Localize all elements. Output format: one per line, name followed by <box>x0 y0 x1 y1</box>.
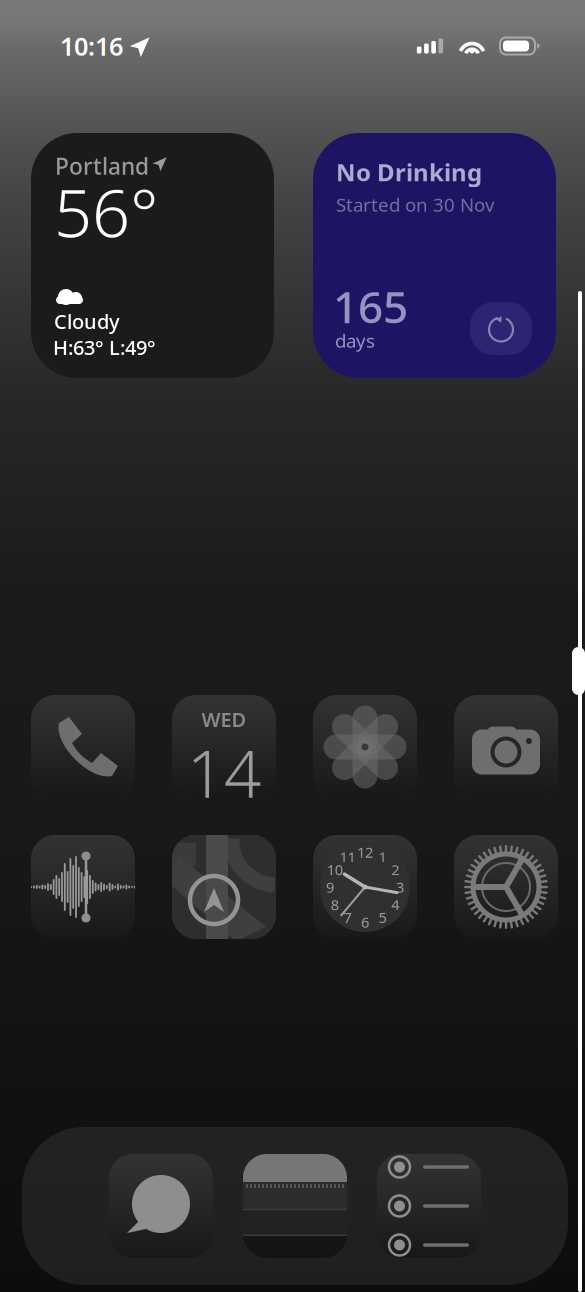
staticText: 6 <box>361 912 369 932</box>
staticText: Portland <box>55 151 149 181</box>
button[interactable]: Messages <box>109 1154 213 1258</box>
button[interactable]: Photos <box>313 695 417 799</box>
staticText: 5 <box>378 908 386 927</box>
button[interactable]: Reminders <box>377 1154 481 1258</box>
staticText: 9 <box>326 877 334 897</box>
staticText: 1 <box>378 847 386 866</box>
staticText: 14 <box>187 729 261 816</box>
button[interactable]: Voice Memos <box>31 835 135 939</box>
staticText: 3 <box>396 877 404 897</box>
staticText: 12 <box>357 842 373 862</box>
staticText: WED <box>201 706 246 733</box>
staticText: 56° <box>54 167 159 255</box>
staticText: H:63° L:49° <box>53 334 156 361</box>
button[interactable]: Calendar <box>172 695 276 799</box>
button[interactable]: Clock <box>313 835 417 939</box>
staticText: No Drinking <box>336 156 482 188</box>
staticText: 4 <box>391 895 399 914</box>
staticText: 7 <box>343 908 351 927</box>
button[interactable]: Phone <box>31 695 135 799</box>
staticText: 165 <box>333 277 408 335</box>
button[interactable]: Maps <box>172 835 276 939</box>
button[interactable]: Portland <box>31 133 274 378</box>
staticText: days <box>335 328 375 353</box>
staticText: Started on 30 Nov <box>336 192 494 217</box>
staticText: 10:16 <box>60 29 123 63</box>
button[interactable]: Books <box>243 1154 347 1258</box>
staticText: 8 <box>331 895 339 914</box>
staticText: 11 <box>339 847 355 866</box>
button[interactable]: No Drinking <box>313 133 556 378</box>
staticText: 10 <box>327 860 343 879</box>
button[interactable]: Camera <box>454 695 558 799</box>
button[interactable]: Settings <box>454 835 558 939</box>
staticText: Cloudy <box>54 308 120 335</box>
staticText: 2 <box>391 860 399 879</box>
